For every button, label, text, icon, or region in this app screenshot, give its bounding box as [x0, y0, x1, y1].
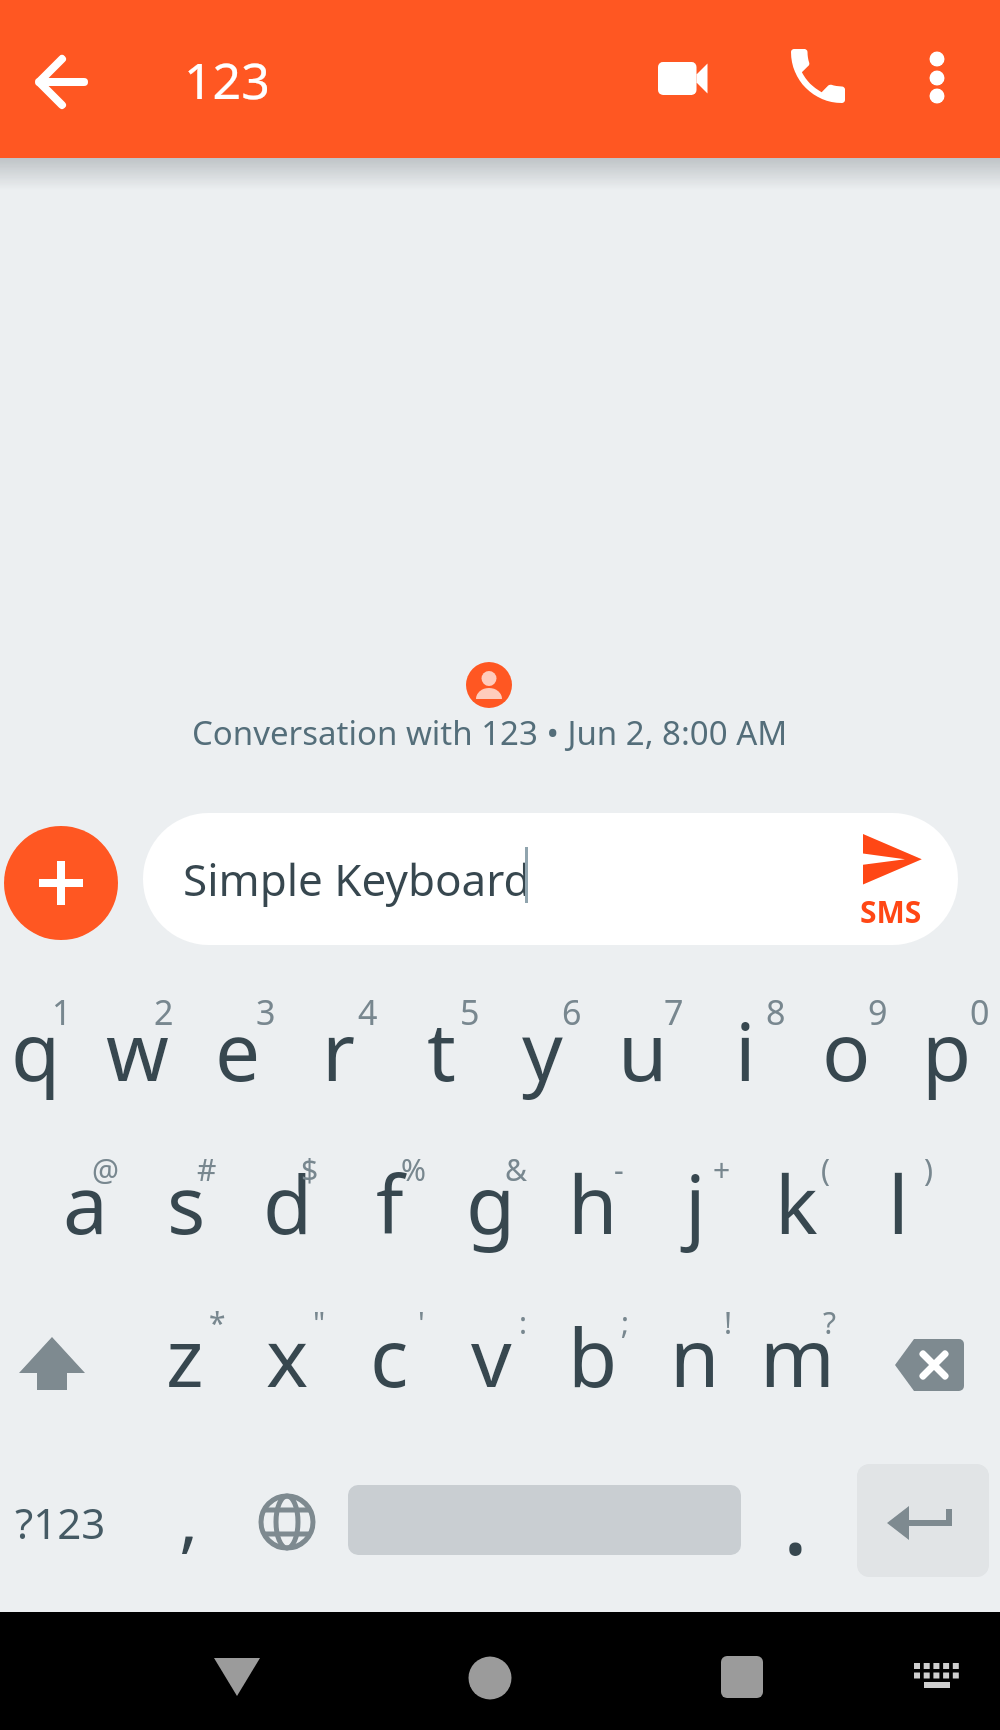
button[interactable]: SMS [838, 815, 954, 943]
staticText: 2 [154, 989, 174, 1035]
button[interactable] [702, 1637, 782, 1717]
button[interactable]: a [50, 1138, 150, 1291]
staticText: 4 [358, 989, 378, 1035]
button[interactable]: n [650, 1291, 750, 1444]
staticText: u [618, 995, 668, 1104]
staticText: : [519, 1302, 528, 1343]
staticText: ' [418, 1302, 425, 1343]
staticText: d [263, 1148, 313, 1257]
staticText: i [735, 995, 756, 1104]
button[interactable] [850, 1444, 1000, 1597]
staticText: e [215, 995, 261, 1104]
button[interactable] [450, 1638, 530, 1718]
button[interactable]: s [150, 1138, 250, 1291]
staticText: g [466, 1148, 516, 1257]
button[interactable]: t [400, 985, 500, 1138]
staticText: ( [821, 1149, 830, 1190]
staticText: * [209, 1302, 226, 1343]
staticText: 5 [460, 989, 480, 1035]
button[interactable]: f [350, 1138, 450, 1291]
staticText: " [313, 1302, 326, 1343]
staticText: @ [92, 1149, 119, 1190]
staticText: ) [924, 1149, 933, 1190]
staticText: m [760, 1301, 835, 1410]
button[interactable] [250, 1444, 350, 1597]
button[interactable]: w [100, 985, 200, 1138]
staticText: ? [823, 1302, 837, 1343]
staticText: $ [301, 1149, 319, 1190]
button[interactable] [905, 35, 969, 125]
button[interactable]: r [300, 985, 400, 1138]
button[interactable] [197, 1636, 277, 1716]
staticText: % [401, 1149, 426, 1190]
button[interactable]: o [800, 985, 900, 1138]
button[interactable]: z [150, 1291, 250, 1444]
staticText: # [197, 1149, 217, 1190]
button[interactable]: h [550, 1138, 650, 1291]
button[interactable] [350, 1444, 750, 1597]
staticText: ! [724, 1302, 733, 1343]
staticText: + [713, 1149, 731, 1190]
staticText: y [522, 995, 563, 1104]
button[interactable]: c [350, 1291, 450, 1444]
staticText: z [166, 1301, 204, 1410]
staticText: n [670, 1301, 720, 1410]
staticText: x [266, 1301, 309, 1410]
staticText: - [614, 1149, 624, 1190]
button[interactable]: m [750, 1291, 850, 1444]
staticText: a [63, 1148, 108, 1257]
button[interactable]: x [250, 1291, 350, 1444]
staticText: b [568, 1301, 618, 1410]
button[interactable] [143, 813, 958, 945]
staticText: j [685, 1148, 706, 1257]
button[interactable] [850, 1291, 1000, 1444]
button[interactable]: k [750, 1138, 850, 1291]
staticText: t [427, 995, 456, 1104]
staticText: h [568, 1148, 618, 1257]
staticText: 8 [766, 989, 786, 1035]
button[interactable] [22, 42, 102, 122]
button[interactable] [0, 1291, 150, 1444]
staticText: Conversation with 123 • Jun 2, 8:00 AM [192, 710, 788, 755]
staticText: p [922, 995, 972, 1104]
staticText: ; [621, 1302, 630, 1343]
button[interactable]: d [250, 1138, 350, 1291]
button[interactable] [777, 38, 857, 118]
staticText: 1 [52, 989, 72, 1035]
button[interactable]: l [850, 1138, 950, 1291]
staticText: r [322, 995, 356, 1104]
staticText: . [782, 1448, 809, 1584]
button[interactable]: j [650, 1138, 750, 1291]
button[interactable]: b [550, 1291, 650, 1444]
staticText: 7 [664, 989, 684, 1035]
button[interactable]: v [450, 1291, 550, 1444]
button[interactable]: i [700, 985, 800, 1138]
button[interactable]: ?123 [0, 1444, 150, 1597]
staticText: o [822, 995, 871, 1104]
staticText: 0 [970, 989, 990, 1035]
button[interactable]: y [500, 985, 600, 1138]
staticText: 123 [184, 46, 270, 114]
staticText: , [179, 1468, 199, 1566]
button[interactable]: p [900, 985, 1000, 1138]
button[interactable] [4, 826, 118, 940]
button[interactable]: u [600, 985, 700, 1138]
staticText: 6 [562, 989, 582, 1035]
button[interactable]: e [200, 985, 300, 1138]
button[interactable]: , [150, 1444, 250, 1597]
staticText: c [370, 1301, 409, 1410]
staticText: Simple Keyboard [183, 849, 531, 909]
button[interactable] [644, 40, 724, 120]
staticText: q [11, 995, 61, 1104]
button[interactable] [897, 1637, 977, 1717]
button[interactable]: q [0, 985, 100, 1138]
staticText: 3 [256, 989, 276, 1035]
staticText: ?123 [15, 1494, 106, 1551]
staticText: 9 [868, 989, 888, 1035]
staticText: f [376, 1148, 404, 1257]
staticText: s [167, 1148, 206, 1257]
staticText: & [505, 1149, 527, 1190]
button[interactable]: g [450, 1138, 550, 1291]
staticText: k [775, 1148, 818, 1257]
button[interactable]: . [750, 1444, 850, 1597]
